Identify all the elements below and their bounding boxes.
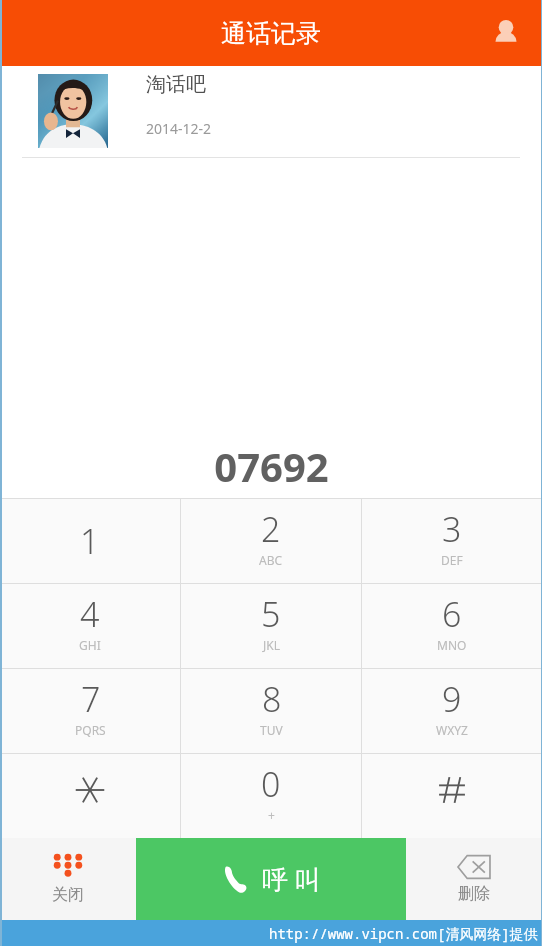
button[interactable]: 4 [0, 584, 180, 668]
button[interactable] [0, 754, 180, 838]
staticText: 关闭 [52, 885, 84, 905]
staticText: 9 [442, 676, 462, 722]
button[interactable]: 关闭 [0, 838, 136, 920]
button[interactable]: 0 [181, 754, 361, 838]
button[interactable]: 8 [181, 669, 361, 753]
button[interactable]: 9 [362, 669, 542, 753]
button[interactable]: 删除 [406, 838, 542, 920]
staticText: DEF [441, 552, 463, 568]
staticText: JKL [263, 637, 280, 653]
staticText: 07692 [214, 439, 329, 493]
button[interactable]: 1 [0, 499, 180, 583]
button[interactable]: 淘话吧 [0, 66, 542, 158]
button[interactable] [362, 754, 542, 838]
button[interactable]: 3 [362, 499, 542, 583]
button[interactable]: 2 [181, 499, 361, 583]
button[interactable]: 5 [181, 584, 361, 668]
staticText: TUV [260, 722, 283, 738]
button[interactable]: 呼 叫 [136, 838, 406, 920]
staticText: http://www.vipcn.com[清风网络]提供 [269, 924, 538, 943]
staticText: 7 [81, 676, 101, 722]
staticText: 4 [80, 591, 100, 637]
staticText: 3 [442, 506, 462, 552]
button[interactable]: 7 [0, 669, 180, 753]
staticText: ABC [259, 552, 283, 568]
staticText: 淘话吧 [146, 72, 206, 97]
staticText: 1 [80, 518, 100, 564]
button[interactable]: Account [480, 7, 532, 59]
staticText: 0 [261, 761, 281, 807]
staticText: 通话记录 [221, 18, 321, 49]
staticText: 删除 [458, 884, 490, 904]
staticText: 8 [262, 676, 282, 722]
staticText: 2014-12-2 [146, 119, 212, 138]
staticText: 6 [442, 591, 462, 637]
staticText: 呼 叫 [262, 861, 321, 897]
staticText: 5 [261, 591, 281, 637]
staticText: WXYZ [436, 722, 468, 738]
staticText: MNO [437, 637, 467, 653]
button[interactable]: 6 [362, 584, 542, 668]
staticText: 2 [261, 506, 281, 552]
staticText: + [268, 807, 275, 823]
staticText: GHI [79, 637, 101, 653]
staticText: PQRS [75, 722, 106, 738]
